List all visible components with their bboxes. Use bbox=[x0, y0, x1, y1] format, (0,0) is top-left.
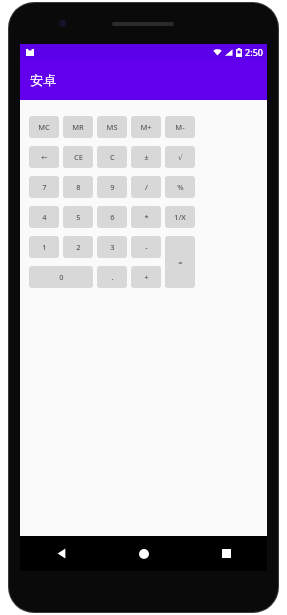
button[interactable]: 1 bbox=[29, 236, 59, 258]
staticText: - bbox=[145, 242, 148, 252]
button[interactable]: 6 bbox=[97, 206, 127, 228]
button[interactable]: % bbox=[165, 176, 195, 198]
staticText: √ bbox=[178, 153, 183, 162]
staticText: MS bbox=[106, 122, 118, 132]
button[interactable]: 7 bbox=[29, 176, 59, 198]
staticText: ± bbox=[144, 152, 149, 162]
staticText: = bbox=[178, 257, 183, 267]
button[interactable]: ± bbox=[131, 146, 161, 168]
button[interactable]: 5 bbox=[63, 206, 93, 228]
button[interactable]: Home bbox=[103, 536, 185, 571]
staticText: + bbox=[144, 272, 149, 282]
button[interactable]: Recent apps bbox=[185, 536, 267, 571]
staticText: 0 bbox=[59, 272, 64, 282]
staticText: 1/X bbox=[174, 212, 186, 222]
staticText: CE bbox=[74, 152, 83, 162]
staticText: * bbox=[144, 212, 149, 222]
staticText: 5 bbox=[76, 212, 81, 222]
staticText: . bbox=[111, 272, 114, 282]
button[interactable]: 2 bbox=[63, 236, 93, 258]
staticText: 6 bbox=[110, 212, 115, 222]
button[interactable]: 1/X bbox=[165, 206, 195, 228]
button[interactable]: M+ bbox=[131, 116, 161, 138]
staticText: MR bbox=[72, 122, 84, 132]
staticText: 3 bbox=[110, 242, 115, 252]
button[interactable]: M- bbox=[165, 116, 195, 138]
button[interactable]: . bbox=[97, 266, 127, 288]
staticText: 9 bbox=[110, 182, 115, 192]
button[interactable]: ← bbox=[29, 146, 59, 168]
button[interactable]: 安卓 bbox=[20, 60, 267, 100]
button[interactable]: CE bbox=[63, 146, 93, 168]
staticText: / bbox=[145, 182, 148, 192]
button[interactable]: * bbox=[131, 206, 161, 228]
staticText: 7 bbox=[42, 182, 47, 192]
staticText: % bbox=[177, 182, 184, 192]
button[interactable]: 8 bbox=[63, 176, 93, 198]
button[interactable]: 9 bbox=[97, 176, 127, 198]
staticText: 8 bbox=[76, 182, 81, 192]
button[interactable]: Back bbox=[20, 536, 103, 571]
button[interactable]: MC bbox=[29, 116, 59, 138]
staticText: ← bbox=[41, 153, 48, 162]
staticText: C bbox=[110, 152, 115, 162]
button[interactable]: 3 bbox=[97, 236, 127, 258]
staticText: MC bbox=[38, 122, 50, 132]
staticText: 2 bbox=[76, 242, 81, 252]
button[interactable]: / bbox=[131, 176, 161, 198]
button[interactable]: = bbox=[165, 236, 195, 288]
staticText: 4 bbox=[42, 212, 47, 222]
button[interactable]: 4 bbox=[29, 206, 59, 228]
button[interactable]: - bbox=[131, 236, 161, 258]
staticText: 安卓 bbox=[30, 72, 56, 88]
button[interactable]: MS bbox=[97, 116, 127, 138]
staticText: 1 bbox=[42, 242, 47, 252]
button[interactable]: √ bbox=[165, 146, 195, 168]
staticText: M+ bbox=[140, 122, 152, 132]
staticText: 2:50 bbox=[245, 46, 263, 58]
button[interactable]: MR bbox=[63, 116, 93, 138]
button[interactable]: + bbox=[131, 266, 161, 288]
button[interactable]: C bbox=[97, 146, 127, 168]
button[interactable]: 0 bbox=[29, 266, 93, 288]
staticText: M- bbox=[175, 122, 185, 132]
